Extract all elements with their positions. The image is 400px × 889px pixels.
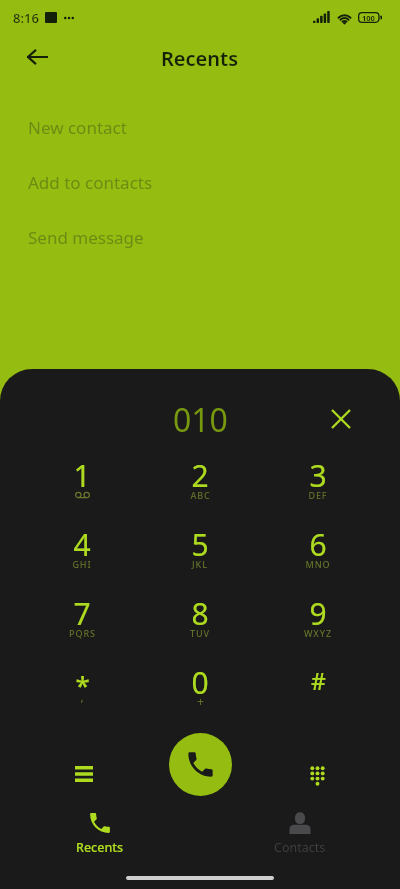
staticText: 8:16 [13,9,39,27]
button[interactable]: Dialpad [293,752,341,800]
button[interactable]: 6 [259,520,377,589]
staticText: ABC [190,489,211,501]
staticText: 1 [73,455,91,496]
button[interactable]: Options [60,750,108,798]
button[interactable]: Clear [319,397,363,441]
staticText: PQRS [69,627,96,639]
button[interactable]: 2 [141,451,259,520]
staticText: 8 [191,593,209,634]
button[interactable]: 3 [259,451,377,520]
staticText: 6 [309,524,327,565]
staticText: Recents [76,839,124,856]
button[interactable]: 5 [141,520,259,589]
button[interactable]: 7 [23,589,141,658]
staticText: 9 [309,593,327,634]
button[interactable]: Recents [0,806,200,862]
button[interactable]: Contacts [200,806,400,862]
button[interactable]: Add to contacts [0,155,400,210]
staticText: JKL [192,558,208,570]
staticText: 100 [362,13,375,23]
staticText: WXYZ [304,627,332,639]
staticText: Recents [161,45,239,72]
staticText: TUV [190,627,210,639]
button[interactable]: 8 [141,589,259,658]
staticText: , [80,688,84,704]
staticText: 7 [73,593,91,634]
staticText: 2 [191,455,209,496]
button[interactable]: Send message [0,210,400,265]
button[interactable]: 9 [259,589,377,658]
staticText: # [311,665,326,696]
staticText: Contacts [274,839,326,856]
staticText: 0 [191,662,209,703]
button[interactable]: # [259,658,377,727]
button[interactable]: Back [13,33,61,81]
button[interactable]: 1 [23,451,141,520]
staticText: New contact [28,116,127,139]
staticText: GHI [72,558,92,570]
staticText: 4 [73,524,91,565]
button[interactable]: 4 [23,520,141,589]
staticText: MNO [305,558,331,570]
staticText: DEF [308,489,328,501]
staticText: Send message [28,226,144,249]
button[interactable]: 0 [141,658,259,727]
staticText: * [75,667,90,702]
staticText: 5 [191,524,209,565]
button[interactable]: * [23,658,141,727]
button[interactable]: Call [169,733,232,796]
button[interactable]: New contact [0,100,400,155]
staticText: 010 [173,398,228,442]
staticText: Add to contacts [28,171,153,194]
staticText: 3 [309,455,327,496]
staticText: + [197,693,204,709]
